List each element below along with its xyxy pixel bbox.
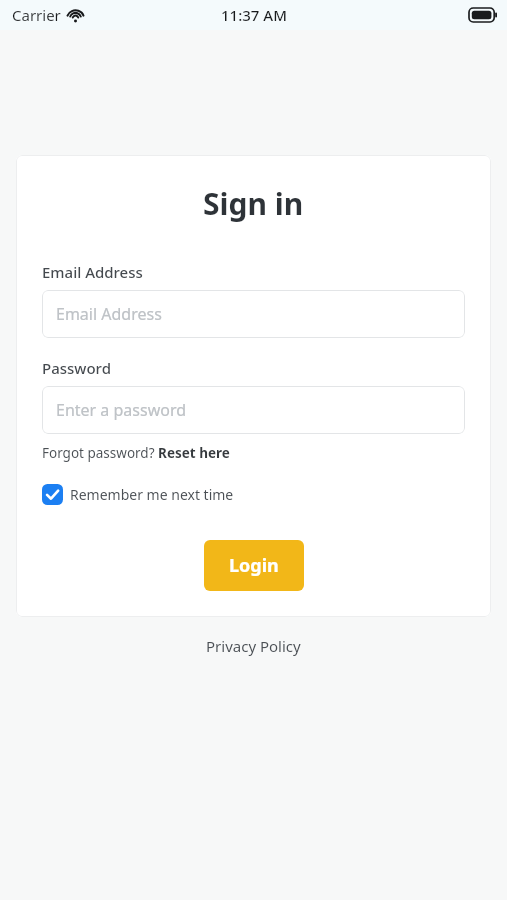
button[interactable]: Privacy Policy bbox=[200, 633, 307, 659]
button[interactable]: Forgot password? Reset here bbox=[42, 444, 230, 462]
staticText: Forgot password? Reset here bbox=[42, 444, 230, 462]
staticText: Email Address bbox=[42, 262, 143, 282]
button[interactable]: Login bbox=[204, 540, 304, 591]
button[interactable]: Email Address bbox=[42, 290, 465, 338]
staticText: Email Address bbox=[56, 303, 162, 325]
staticText: 11:37 AM bbox=[221, 5, 287, 25]
staticText: Remember me next time bbox=[70, 485, 234, 504]
button[interactable]: Remember me checkbox, checked bbox=[42, 482, 234, 507]
button[interactable]: Enter a password bbox=[42, 386, 465, 434]
staticText: Carrier bbox=[12, 5, 61, 25]
staticText: Enter a password bbox=[56, 399, 187, 421]
staticText: Privacy Policy bbox=[206, 636, 301, 656]
other: Remember me checkbox, checked bbox=[42, 484, 63, 505]
staticText: Password bbox=[42, 358, 111, 378]
staticText: Sign in bbox=[203, 183, 304, 224]
staticText: Login bbox=[229, 553, 279, 578]
